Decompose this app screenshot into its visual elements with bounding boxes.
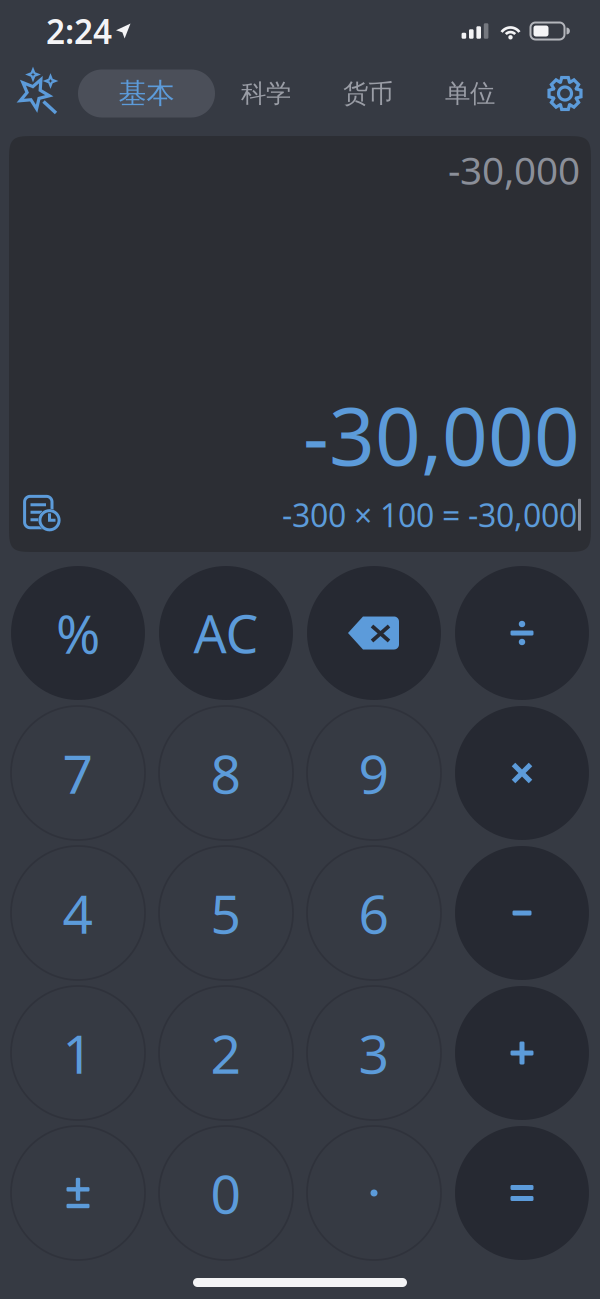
staticText: -30,000 xyxy=(448,144,580,195)
button[interactable]: Minus xyxy=(455,846,589,980)
staticText: 单位 xyxy=(445,78,495,109)
button[interactable]: 6 xyxy=(307,846,441,980)
button[interactable]: 单位 xyxy=(419,69,521,117)
button[interactable]: 科学 xyxy=(215,69,317,117)
button[interactable]: Divide xyxy=(455,566,589,700)
staticText: 4 xyxy=(62,878,93,948)
staticText: 7 xyxy=(62,738,93,808)
staticText: -300 × 100 = -30,000 xyxy=(282,493,577,536)
button[interactable]: 5 xyxy=(159,846,293,980)
button[interactable]: 基本 xyxy=(78,69,215,117)
button[interactable]: 9 xyxy=(307,706,441,840)
button[interactable]: Decimal point xyxy=(307,1126,441,1260)
staticText: % xyxy=(56,598,100,668)
button[interactable]: Equals xyxy=(455,1126,589,1260)
staticText: 9 xyxy=(358,738,389,808)
button[interactable]: 4 xyxy=(11,846,145,980)
button[interactable]: Plus xyxy=(455,986,589,1120)
button[interactable]: 0 xyxy=(159,1126,293,1260)
staticText: 6 xyxy=(358,878,389,948)
button[interactable]: 8 xyxy=(159,706,293,840)
staticText: 科学 xyxy=(241,78,291,109)
button[interactable]: 2 xyxy=(159,986,293,1120)
staticText: 1 xyxy=(62,1018,93,1088)
staticText: 8 xyxy=(210,738,241,808)
button[interactable]: Effects xyxy=(2,64,78,122)
button[interactable]: All clear xyxy=(159,566,293,700)
staticText: 2 xyxy=(210,1018,241,1088)
staticText: 5 xyxy=(210,878,241,948)
button[interactable]: Delete xyxy=(307,566,441,700)
button[interactable]: Settings xyxy=(543,64,587,122)
staticText: AC xyxy=(193,598,258,668)
staticText: 货币 xyxy=(343,78,393,109)
button[interactable]: 1 xyxy=(11,986,145,1120)
button[interactable]: 货币 xyxy=(317,69,419,117)
button[interactable]: Percent xyxy=(11,566,145,700)
staticText: -30,000 xyxy=(303,381,580,487)
staticText: 3 xyxy=(358,1018,389,1088)
button[interactable]: Multiply xyxy=(455,706,589,840)
staticText: 基本 xyxy=(118,76,174,111)
button[interactable]: 3 xyxy=(307,986,441,1120)
staticText: 2:24 xyxy=(46,9,112,53)
staticText: 0 xyxy=(210,1158,241,1228)
button[interactable]: 7 xyxy=(11,706,145,840)
button[interactable]: Plus minus xyxy=(11,1126,145,1260)
